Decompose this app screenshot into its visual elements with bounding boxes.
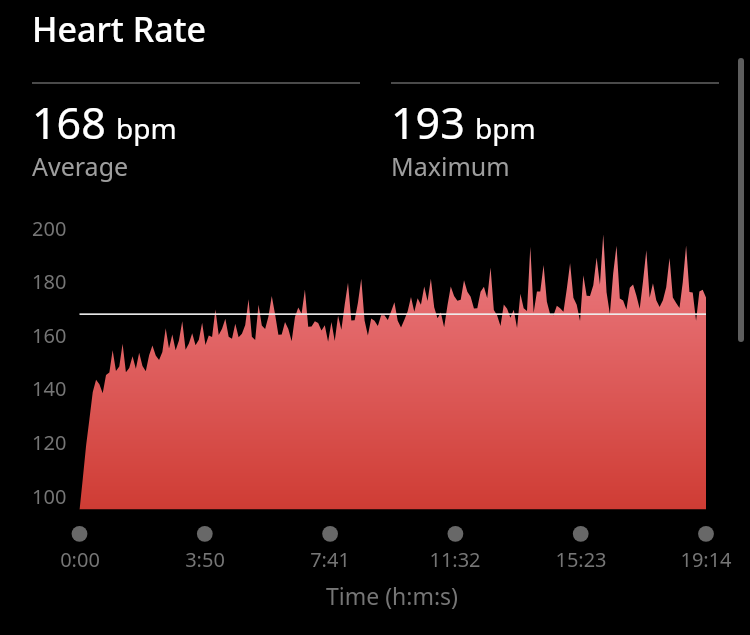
button[interactable]: Heart rate chart (20, 210, 720, 530)
staticText: Maximum (391, 149, 510, 183)
staticText: 3:50 (155, 546, 255, 573)
staticText: 160 (32, 322, 67, 349)
staticText: 19:14 (656, 546, 750, 573)
staticText: bpm (475, 109, 536, 147)
staticText: 100 (32, 483, 67, 510)
staticText: 0:00 (30, 546, 130, 573)
staticText: bpm (116, 109, 177, 147)
staticText: 200 (32, 215, 67, 242)
staticText: 168 (32, 93, 106, 152)
staticText: 193 (391, 93, 465, 152)
staticText: 140 (32, 375, 67, 402)
button[interactable]: 193 (391, 93, 691, 185)
staticText: Average (32, 149, 129, 183)
staticText: 11:32 (405, 546, 505, 573)
button[interactable]: 168 (32, 93, 332, 185)
staticText: 7:41 (280, 546, 380, 573)
staticText: 180 (32, 268, 67, 295)
staticText: Time (h:m:s) (292, 580, 492, 611)
staticText: 120 (32, 429, 67, 456)
staticText: Heart Rate (32, 6, 207, 52)
staticText: 15:23 (531, 546, 631, 573)
